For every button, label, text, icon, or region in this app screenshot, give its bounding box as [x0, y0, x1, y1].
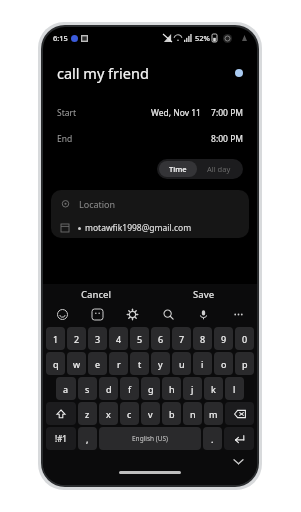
- staticText: 0: [242, 333, 248, 345]
- button[interactable]: Stickers: [88, 305, 106, 323]
- button[interactable]: v: [141, 402, 160, 425]
- button[interactable]: l: [225, 377, 244, 400]
- button[interactable]: 8: [193, 327, 212, 350]
- staticText: 3: [95, 333, 101, 345]
- button[interactable]: English (US): [99, 427, 201, 450]
- staticText: k: [211, 383, 216, 395]
- staticText: d: [106, 383, 112, 395]
- button[interactable]: Enter: [224, 427, 254, 450]
- staticText: h: [169, 383, 175, 395]
- button[interactable]: End: [43, 129, 257, 149]
- button[interactable]: h: [162, 377, 181, 400]
- staticText: u: [179, 358, 185, 370]
- staticText: 7:00 PM: [209, 107, 243, 119]
- button[interactable]: j: [183, 377, 202, 400]
- button[interactable]: m: [204, 402, 223, 425]
- staticText: a: [63, 383, 69, 395]
- staticText: i: [201, 358, 204, 370]
- staticText: English (US): [132, 434, 169, 443]
- staticText: 9: [221, 333, 227, 345]
- button[interactable]: !#1: [46, 427, 76, 450]
- button[interactable]: n: [183, 402, 202, 425]
- staticText: 4: [116, 333, 122, 345]
- button[interactable]: g: [141, 377, 160, 400]
- button[interactable]: All day: [197, 161, 241, 177]
- staticText: 6:15: [53, 33, 68, 43]
- button[interactable]: o: [214, 352, 233, 375]
- button[interactable]: r: [109, 352, 128, 375]
- button[interactable]: s: [78, 377, 97, 400]
- button[interactable]: 1: [46, 327, 65, 350]
- button[interactable]: More options: [229, 305, 247, 323]
- button[interactable]: t: [130, 352, 149, 375]
- button[interactable]: Shift: [46, 402, 76, 425]
- button[interactable]: 7: [172, 327, 191, 350]
- button[interactable]: Cancel: [43, 284, 150, 304]
- button[interactable]: 2: [67, 327, 86, 350]
- staticText: v: [148, 408, 153, 420]
- staticText: l: [233, 383, 236, 395]
- button[interactable]: Emoji: [53, 305, 71, 323]
- button[interactable]: 0: [235, 327, 254, 350]
- button[interactable]: motawfik1998@gmail.com: [51, 218, 249, 238]
- button[interactable]: Save: [150, 284, 257, 304]
- button[interactable]: c: [120, 402, 139, 425]
- button[interactable]: x: [99, 402, 118, 425]
- button[interactable]: 5: [130, 327, 149, 350]
- button[interactable]: z: [78, 402, 97, 425]
- staticText: All day: [207, 164, 231, 174]
- staticText: r: [117, 358, 121, 370]
- button[interactable]: 6: [151, 327, 170, 350]
- staticText: ,: [86, 433, 89, 445]
- button[interactable]: ,: [78, 427, 97, 450]
- button[interactable]: .: [203, 427, 222, 450]
- staticText: e: [95, 358, 101, 370]
- button[interactable]: b: [162, 402, 181, 425]
- staticText: x: [106, 408, 111, 420]
- button[interactable]: call my friend: [43, 49, 257, 97]
- button[interactable]: Time: [159, 161, 197, 177]
- staticText: o: [221, 358, 227, 370]
- staticText: q: [53, 358, 59, 370]
- button[interactable]: Settings: [123, 305, 141, 323]
- button[interactable]: f: [120, 377, 139, 400]
- button[interactable]: Search: [159, 305, 177, 323]
- staticText: p: [242, 358, 248, 370]
- staticText: !#1: [55, 433, 67, 444]
- staticText: 8:00 PM: [209, 133, 243, 145]
- staticText: 7: [179, 333, 185, 345]
- button[interactable]: w: [67, 352, 86, 375]
- button[interactable]: k: [204, 377, 223, 400]
- button[interactable]: d: [99, 377, 118, 400]
- button[interactable]: Hide keyboard: [231, 454, 245, 468]
- button[interactable]: 4: [109, 327, 128, 350]
- staticText: 2: [74, 333, 80, 345]
- button[interactable]: 9: [214, 327, 233, 350]
- staticText: n: [190, 408, 196, 420]
- button[interactable]: 3: [88, 327, 107, 350]
- button[interactable]: y: [151, 352, 170, 375]
- button[interactable]: u: [172, 352, 191, 375]
- staticText: Cancel: [81, 288, 112, 301]
- staticText: c: [127, 408, 132, 420]
- staticText: m: [209, 408, 218, 420]
- button[interactable]: Location: [51, 190, 249, 218]
- staticText: End: [57, 133, 73, 145]
- staticText: Location: [79, 198, 116, 210]
- button[interactable]: Voice input: [194, 305, 212, 323]
- staticText: y: [158, 358, 163, 370]
- staticText: 5: [137, 333, 143, 345]
- staticText: motawfik1998@gmail.com: [85, 222, 192, 234]
- button[interactable]: Backspace: [225, 402, 254, 425]
- staticText: g: [148, 383, 154, 395]
- button[interactable]: i: [193, 352, 212, 375]
- staticText: 52%: [195, 33, 210, 43]
- button[interactable]: p: [235, 352, 254, 375]
- button[interactable]: a: [56, 377, 76, 400]
- button[interactable]: Start: [43, 103, 257, 123]
- staticText: 8: [200, 333, 206, 345]
- other: Calendar color: [235, 69, 243, 77]
- button[interactable]: e: [88, 352, 107, 375]
- staticText: z: [85, 408, 90, 420]
- button[interactable]: q: [46, 352, 65, 375]
